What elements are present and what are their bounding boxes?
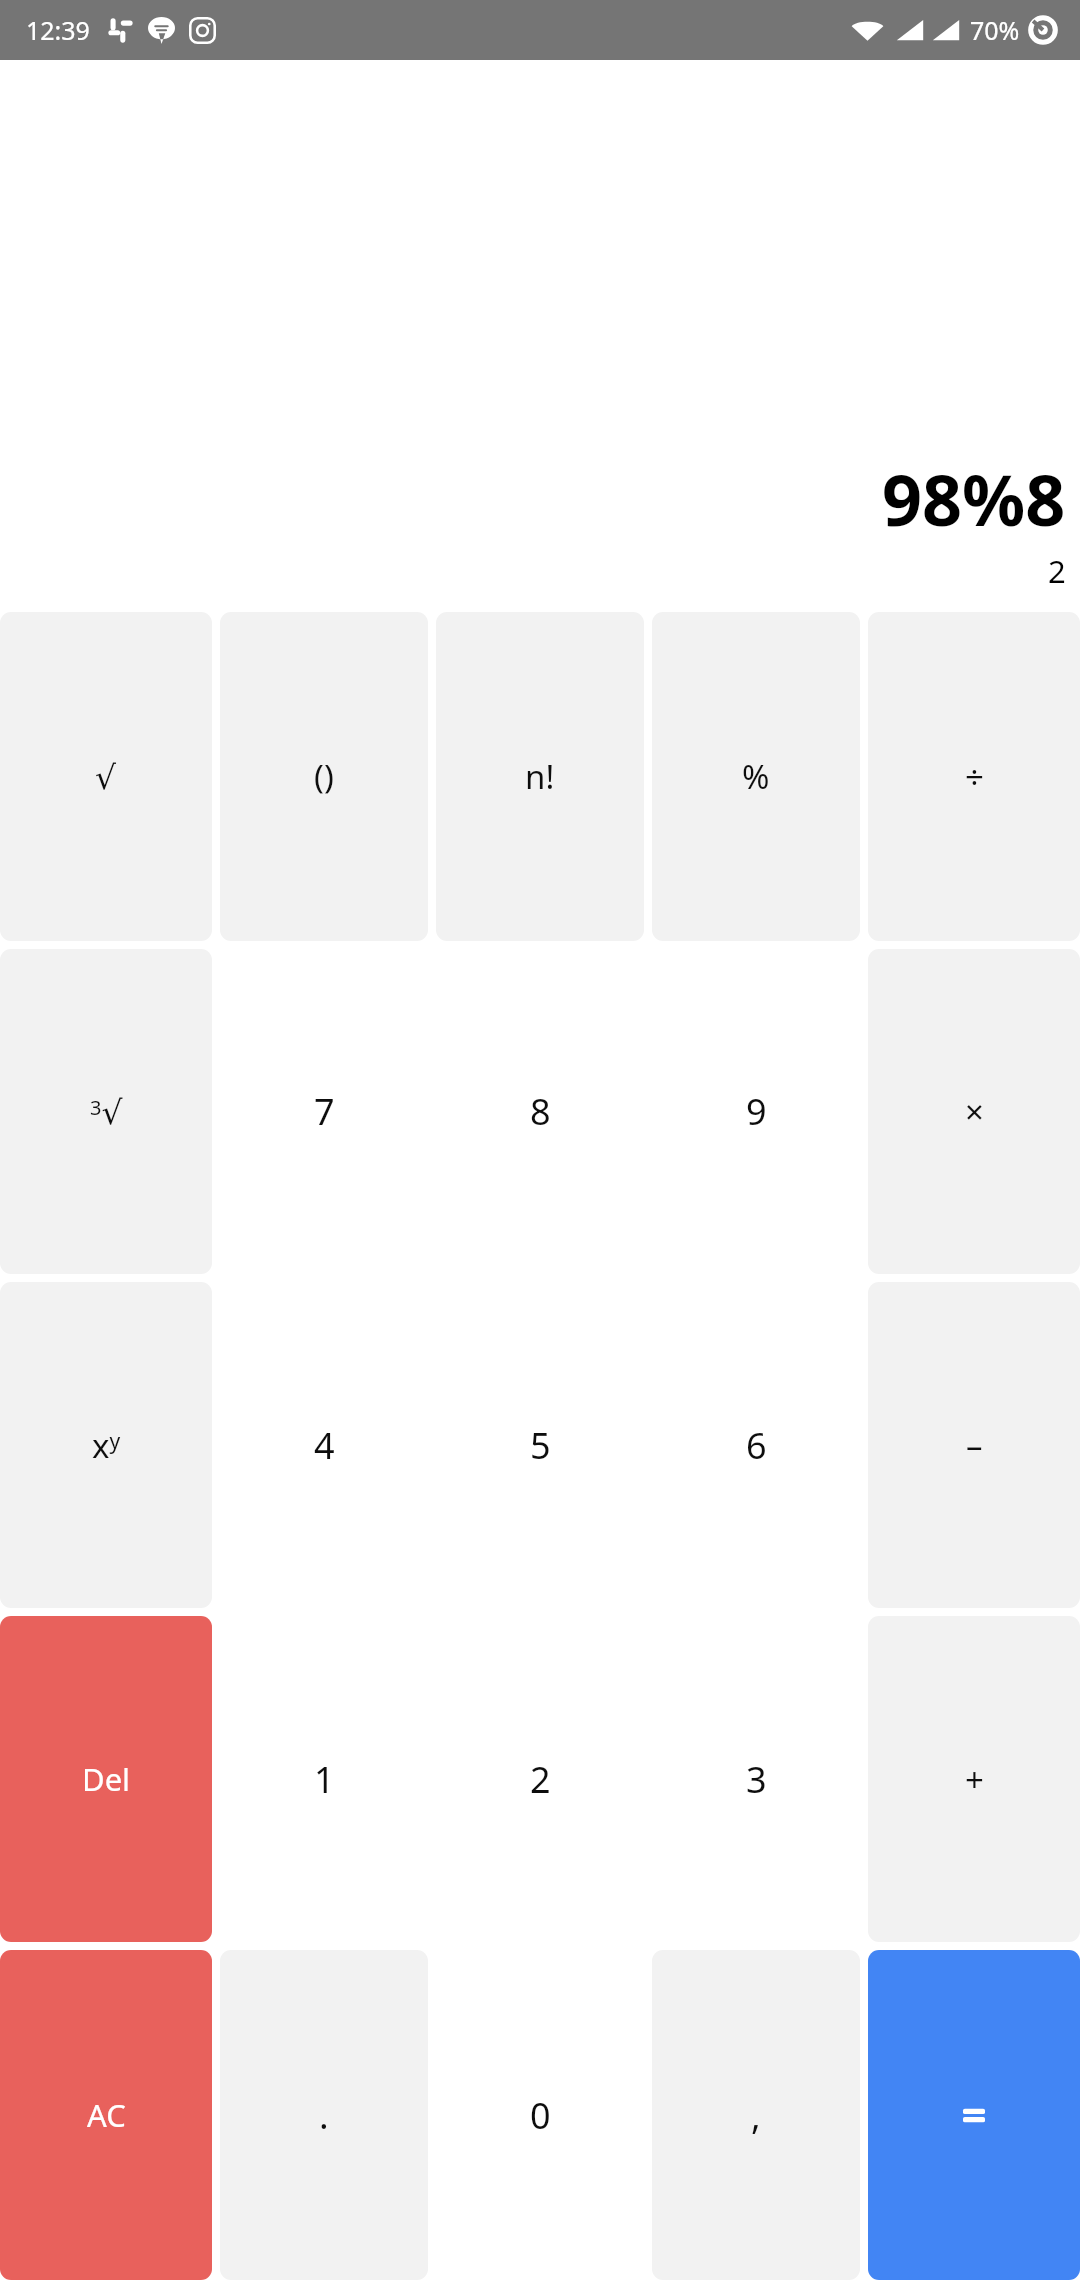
staticText: n! bbox=[525, 754, 555, 799]
button[interactable]: 4 bbox=[220, 1282, 428, 1608]
button[interactable]: Del bbox=[0, 1616, 212, 1942]
staticText: 1 bbox=[314, 1755, 335, 1804]
staticText: 2 bbox=[530, 1755, 551, 1804]
staticText: – bbox=[966, 1423, 983, 1468]
staticText: . bbox=[319, 2091, 329, 2140]
button[interactable]: n! bbox=[436, 612, 644, 941]
staticText: 98%8 bbox=[882, 451, 1066, 546]
button[interactable]: ÷ bbox=[868, 612, 1080, 941]
staticText: 9 bbox=[746, 1087, 767, 1136]
staticText: 4 bbox=[314, 1421, 335, 1470]
staticText: 3√ bbox=[90, 1093, 123, 1131]
button[interactable]: , bbox=[652, 1950, 860, 2280]
staticText: 6 bbox=[746, 1421, 767, 1470]
staticText: xy bbox=[92, 1423, 121, 1468]
button[interactable]: × bbox=[868, 949, 1080, 1274]
button[interactable]: 1 bbox=[220, 1616, 428, 1942]
button[interactable]: – bbox=[868, 1282, 1080, 1608]
staticText: () bbox=[314, 754, 334, 799]
button[interactable]: Cube root bbox=[0, 949, 212, 1274]
button[interactable]: 8 bbox=[436, 949, 644, 1274]
button[interactable]: + bbox=[868, 1616, 1080, 1942]
staticText: × bbox=[965, 1089, 984, 1134]
staticText: ÷ bbox=[965, 754, 984, 799]
button[interactable]: 5 bbox=[436, 1282, 644, 1608]
staticText: + bbox=[965, 1757, 984, 1802]
staticText: 70% bbox=[970, 13, 1020, 47]
staticText: 8 bbox=[530, 1087, 551, 1136]
staticText: 2 bbox=[1048, 550, 1066, 592]
staticText: , bbox=[751, 2091, 761, 2140]
button[interactable]: 0 bbox=[436, 1950, 644, 2280]
button[interactable]: 2 bbox=[436, 1616, 644, 1942]
button[interactable]: . bbox=[220, 1950, 428, 2280]
button[interactable]: 3 bbox=[652, 1616, 860, 1942]
staticText: % bbox=[742, 754, 770, 799]
staticText: 5 bbox=[530, 1421, 551, 1470]
staticText: AC bbox=[87, 2094, 126, 2136]
staticText: 7 bbox=[314, 1087, 335, 1136]
button[interactable]: 9 bbox=[652, 949, 860, 1274]
button[interactable]: 6 bbox=[652, 1282, 860, 1608]
button[interactable]: Power bbox=[0, 1282, 212, 1608]
button[interactable]: 7 bbox=[220, 949, 428, 1274]
button[interactable]: % bbox=[652, 612, 860, 941]
button[interactable]: AC bbox=[0, 1950, 212, 2280]
staticText: √ bbox=[95, 758, 117, 796]
button[interactable]: √ bbox=[0, 612, 212, 941]
staticText: 12:39 bbox=[26, 13, 90, 47]
staticText: Del bbox=[82, 1758, 131, 1800]
staticText: 3 bbox=[746, 1755, 767, 1804]
button[interactable]: Equals bbox=[868, 1950, 1080, 2280]
staticText: 0 bbox=[530, 2091, 551, 2140]
button[interactable]: () bbox=[220, 612, 428, 941]
